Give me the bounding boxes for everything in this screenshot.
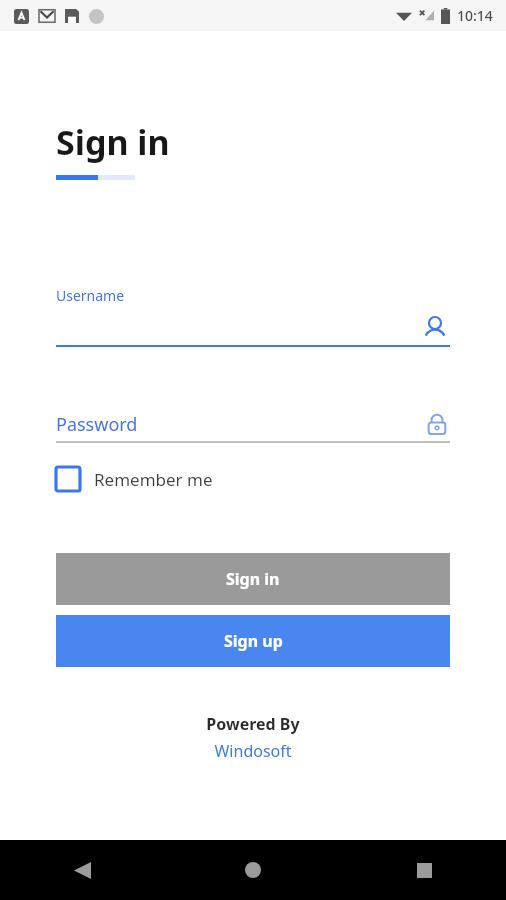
staticText: Remember me — [94, 468, 213, 491]
button[interactable]: Recent apps — [400, 846, 448, 894]
button[interactable]: Password — [56, 407, 450, 443]
staticText: Sign in — [226, 568, 280, 590]
button[interactable]: Sign in — [56, 553, 450, 605]
staticText: Sign up — [224, 630, 283, 652]
staticText: Sign in — [56, 119, 170, 165]
other: Username — [420, 314, 450, 344]
staticText: Password — [56, 412, 138, 437]
button[interactable]: Username — [56, 286, 450, 347]
staticText: 10:14 — [457, 6, 493, 25]
button[interactable]: Windosoft — [214, 740, 292, 762]
button[interactable]: Home — [229, 846, 277, 894]
staticText: Username — [56, 286, 125, 305]
staticText: Powered By — [206, 713, 300, 735]
button[interactable]: Sign up — [56, 615, 450, 667]
button[interactable]: Remember me — [56, 467, 213, 491]
button[interactable]: Back — [58, 846, 106, 894]
other: Password — [424, 411, 450, 437]
